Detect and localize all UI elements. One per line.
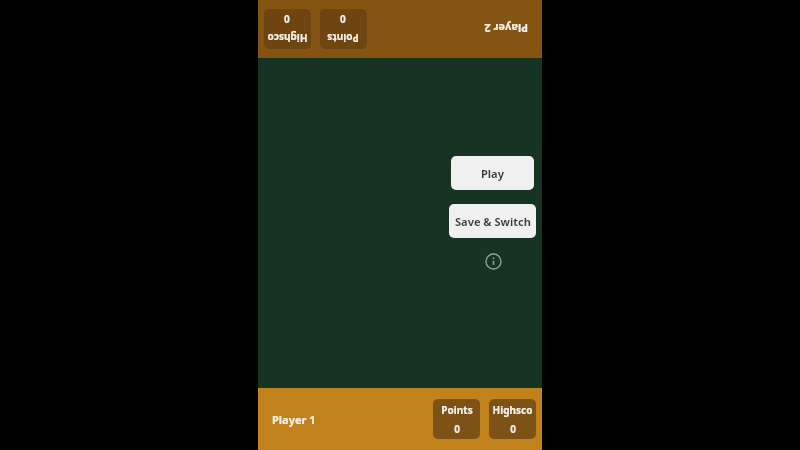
staticText: Points [327,31,359,45]
button[interactable]: Highscore [489,399,536,439]
staticText: Player 2 [484,21,528,36]
staticText: Save & Switch [455,214,531,229]
staticText: 0 [454,422,460,436]
staticText: Play [481,166,504,181]
button[interactable]: Points [433,399,480,439]
staticText: Points [441,403,473,417]
button[interactable]: Save & Switch [449,204,536,238]
staticText: Highscore [491,403,534,417]
button[interactable]: Info [482,250,504,272]
staticText: 0 [510,422,516,436]
button[interactable]: Points [320,9,367,49]
staticText: 0 [284,12,290,26]
button[interactable]: Highscore [264,9,311,49]
staticText: Highscore [266,31,309,45]
staticText: Player 1 [272,412,316,427]
staticText: 0 [340,12,346,26]
button[interactable]: Play [451,156,534,190]
